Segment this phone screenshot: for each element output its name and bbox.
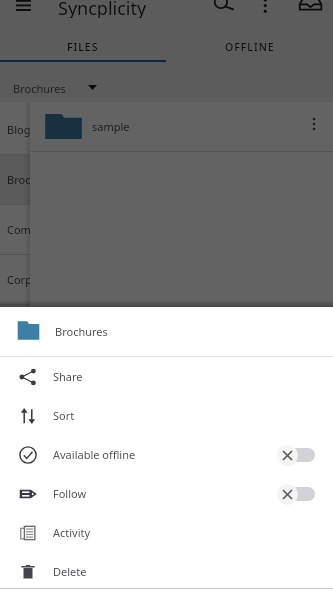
button[interactable]: Toggle bbox=[277, 443, 319, 467]
button[interactable]: Available offline bbox=[0, 435, 333, 474]
button[interactable]: Company bbox=[0, 205, 333, 254]
button[interactable]: Search bbox=[214, 0, 234, 15]
staticText: Delete bbox=[53, 564, 87, 579]
staticText: Brochures bbox=[13, 81, 66, 96]
button[interactable]: Inbox bbox=[299, 0, 322, 14]
staticText: Activity bbox=[53, 525, 91, 540]
staticText: Corporate bbox=[7, 272, 60, 287]
button[interactable]: Follow bbox=[0, 474, 333, 513]
button[interactable]: Sort bbox=[0, 396, 333, 435]
staticText: Share bbox=[53, 369, 83, 384]
button[interactable]: FILES bbox=[0, 22, 166, 62]
staticText: Downloads bbox=[7, 372, 65, 387]
button[interactable]: sample bbox=[30, 102, 333, 151]
staticText: Blog bbox=[7, 122, 31, 137]
staticText: FILES bbox=[67, 40, 99, 54]
button[interactable]: OFFLINE bbox=[166, 22, 333, 62]
button[interactable]: Blog bbox=[0, 105, 333, 154]
staticText: Documents bbox=[7, 322, 67, 337]
staticText: Brochures bbox=[55, 324, 108, 339]
button[interactable]: Menu bbox=[16, 0, 31, 22]
staticText: Brochures bbox=[7, 172, 60, 187]
button[interactable]: Item options bbox=[305, 112, 323, 142]
staticText: OFFLINE bbox=[225, 40, 275, 54]
button[interactable]: Brochures bbox=[0, 155, 333, 204]
button[interactable]: Downloads bbox=[0, 355, 333, 404]
button[interactable]: Brochures bbox=[0, 307, 333, 356]
button[interactable]: More options bbox=[257, 0, 275, 12]
button[interactable]: Activity bbox=[0, 513, 333, 552]
staticText: Syncplicity bbox=[58, 0, 147, 18]
staticText: Sort bbox=[53, 408, 75, 423]
staticText: sample bbox=[92, 119, 130, 134]
staticText: Company bbox=[7, 222, 57, 237]
button[interactable]: Toggle bbox=[277, 482, 319, 506]
button[interactable]: Delete bbox=[0, 552, 333, 591]
button[interactable]: Share bbox=[0, 357, 333, 396]
button[interactable]: Documents bbox=[0, 305, 333, 354]
staticText: Follow bbox=[53, 486, 87, 501]
button[interactable]: Corporate bbox=[0, 255, 333, 304]
staticText: Available offline bbox=[53, 447, 136, 462]
